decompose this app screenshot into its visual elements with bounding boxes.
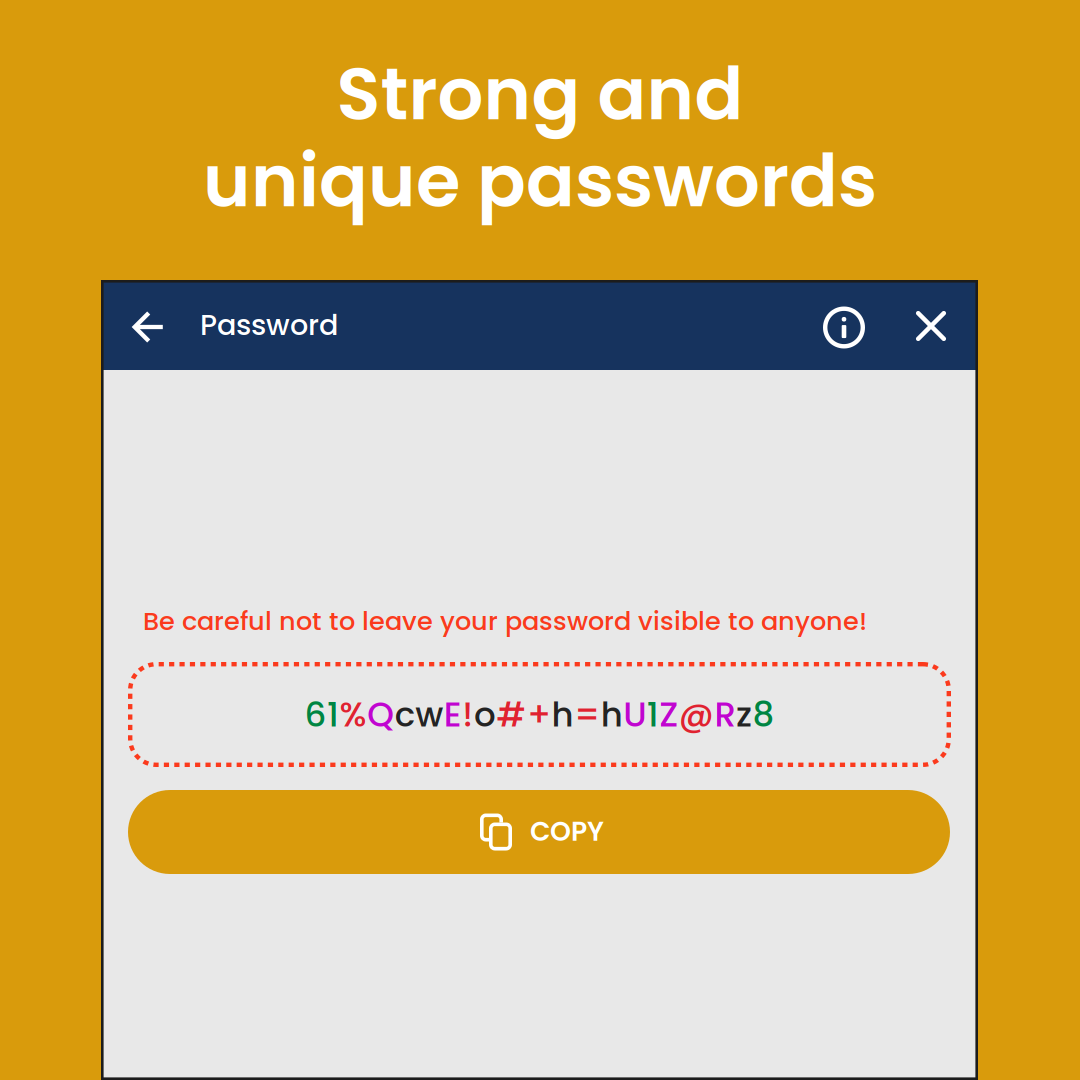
- staticText: 1: [327, 691, 339, 738]
- staticText: #: [496, 691, 526, 738]
- staticText: @: [679, 691, 714, 738]
- button[interactable]: Back: [101, 280, 197, 370]
- staticText: h: [601, 691, 623, 738]
- staticText: o: [474, 691, 496, 738]
- staticText: +: [527, 691, 551, 738]
- staticText: c: [395, 691, 415, 738]
- staticText: Z: [659, 691, 678, 738]
- staticText: %: [340, 691, 367, 738]
- staticText: 1: [647, 691, 659, 738]
- staticText: !: [462, 691, 473, 738]
- staticText: Q: [367, 691, 394, 738]
- button[interactable]: Information: [804, 280, 884, 370]
- staticText: Strong and: [336, 44, 743, 144]
- staticText: 8: [752, 691, 774, 738]
- staticText: COPY: [530, 813, 604, 850]
- staticText: Password: [200, 305, 338, 345]
- staticText: h: [552, 691, 574, 738]
- staticText: z: [736, 691, 752, 738]
- button[interactable]: COPY: [128, 790, 950, 874]
- staticText: w: [415, 691, 443, 738]
- staticText: E: [444, 691, 462, 738]
- staticText: =: [574, 691, 600, 738]
- staticText: 6: [304, 691, 326, 738]
- button[interactable]: Close: [884, 280, 978, 370]
- staticText: U: [623, 691, 646, 738]
- staticText: R: [714, 691, 735, 738]
- staticText: unique passwords: [203, 131, 877, 231]
- staticText: Be careful not to leave your password vi…: [143, 603, 867, 639]
